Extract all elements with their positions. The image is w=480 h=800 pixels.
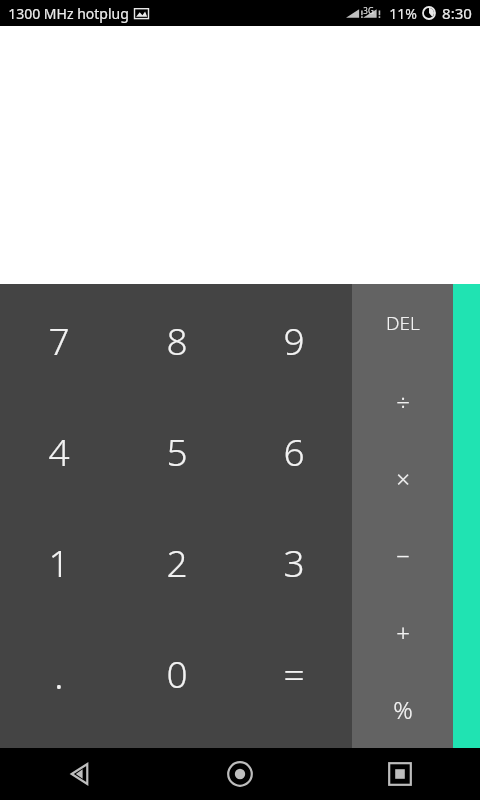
button[interactable]: Back <box>0 748 160 800</box>
staticText: + <box>396 616 410 649</box>
staticText: ÷ <box>396 385 410 418</box>
button[interactable]: 2 <box>118 506 235 617</box>
button[interactable]: 6 <box>235 395 352 506</box>
button[interactable]: Delete <box>352 284 453 362</box>
staticText: 6 <box>283 426 305 476</box>
staticText: 4 <box>48 426 70 476</box>
staticText: DEL <box>386 310 420 336</box>
staticText: 11% <box>389 4 417 23</box>
staticText: 1300 MHz hotplug <box>8 4 129 23</box>
button[interactable]: Recent apps <box>320 748 480 800</box>
staticText: 9 <box>283 315 305 365</box>
staticText: 0 <box>166 648 188 698</box>
button[interactable]: 0 <box>118 617 235 728</box>
staticText: 5 <box>166 426 188 476</box>
staticText: 8:30 <box>442 3 472 23</box>
staticText: 7 <box>48 315 70 365</box>
button[interactable]: 3 <box>235 506 352 617</box>
button[interactable]: 4 <box>0 395 118 506</box>
staticText: 1 <box>48 537 70 587</box>
button[interactable]: Multiply <box>352 440 453 517</box>
staticText: 2 <box>166 537 188 587</box>
button[interactable]: Percent <box>352 671 453 748</box>
button[interactable]: 5 <box>118 395 235 506</box>
button[interactable]: 9 <box>235 284 352 395</box>
staticText: 3G <box>363 5 374 16</box>
staticText: 3 <box>283 537 305 587</box>
button[interactable]: Home <box>160 748 320 800</box>
staticText: . <box>54 646 64 700</box>
staticText: 8 <box>166 315 188 365</box>
button[interactable]: Divide <box>352 362 453 440</box>
button[interactable]: Add <box>352 594 453 671</box>
button[interactable]: Subtract <box>352 517 453 594</box>
staticText: = <box>283 648 305 698</box>
staticText: − <box>396 539 410 572</box>
staticText: × <box>396 462 410 495</box>
button[interactable]: 1 <box>0 506 118 617</box>
button[interactable]: 7 <box>0 284 118 395</box>
button[interactable]: = <box>235 617 352 728</box>
button[interactable]: 8 <box>118 284 235 395</box>
button[interactable]: . <box>0 617 118 728</box>
staticText: % <box>393 693 413 726</box>
